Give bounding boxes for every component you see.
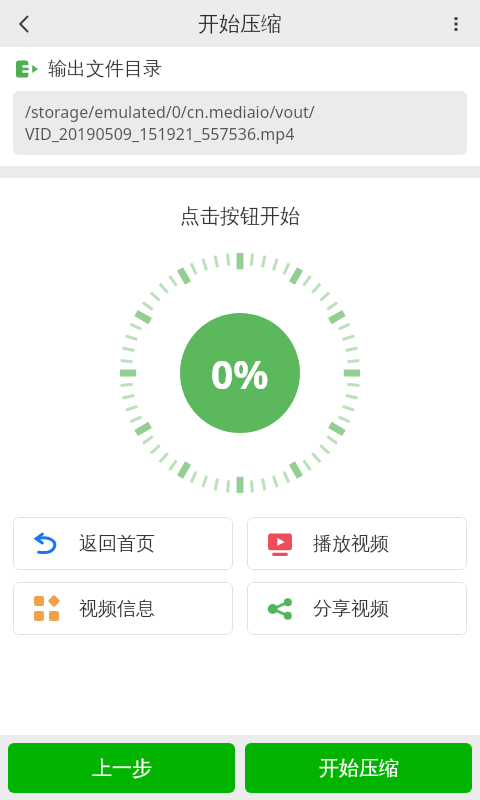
- button[interactable]: 返回首页: [13, 517, 233, 570]
- other: 播放视频: [267, 531, 293, 557]
- button[interactable]: More options: [432, 0, 480, 47]
- button[interactable]: 开始压缩: [245, 743, 472, 793]
- other: 返回首页: [33, 531, 59, 557]
- staticText: 播放视频: [313, 532, 389, 556]
- staticText: 上一步: [92, 756, 152, 781]
- staticText: /storage/emulated/0/cn.mediaio/vout/ VID…: [25, 101, 315, 145]
- staticText: 0%: [211, 347, 269, 400]
- staticText: 视频信息: [79, 597, 155, 621]
- button[interactable]: 分享视频: [247, 582, 467, 635]
- other: 视频信息: [34, 596, 59, 621]
- button[interactable]: /storage/emulated/0/cn.mediaio/vout/ VID…: [13, 91, 467, 155]
- staticText: 分享视频: [313, 597, 389, 621]
- staticText: 开始压缩: [198, 11, 282, 37]
- button[interactable]: Back: [0, 0, 48, 47]
- button[interactable]: 上一步: [8, 743, 235, 793]
- button[interactable]: 播放视频: [247, 517, 467, 570]
- other: 分享视频: [267, 596, 293, 622]
- staticText: 输出文件目录: [48, 57, 162, 81]
- button[interactable]: 输出文件目录: [16, 57, 464, 81]
- button[interactable]: 视频信息: [13, 582, 233, 635]
- staticText: 点击按钮开始: [180, 204, 300, 229]
- staticText: 返回首页: [79, 532, 155, 556]
- staticText: 开始压缩: [319, 756, 399, 781]
